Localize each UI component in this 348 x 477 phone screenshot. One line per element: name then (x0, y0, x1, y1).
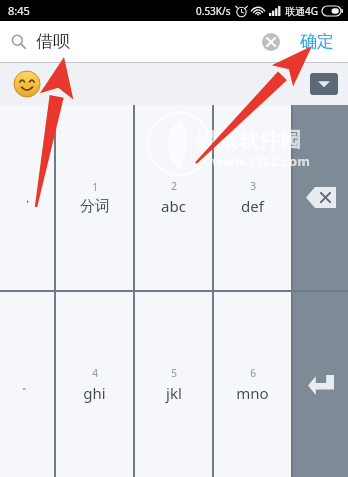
button[interactable]: ， (0, 105, 54, 290)
button[interactable]: 清除 (254, 25, 288, 59)
staticText: abc (161, 196, 186, 216)
button[interactable]: 删除 (293, 105, 348, 290)
button[interactable]: def (214, 105, 291, 290)
staticText: 。 (22, 378, 33, 392)
button[interactable]: 分词 (56, 105, 133, 290)
staticText: www.33LC.com (212, 152, 310, 170)
staticText: 联通4G (285, 4, 318, 18)
staticText: ghi (83, 383, 106, 403)
staticText: 1 (92, 180, 98, 194)
staticText: 借呗 (36, 31, 70, 52)
staticText: mno (236, 383, 269, 403)
staticText: 3 (250, 179, 256, 193)
button[interactable]: 表情 (12, 69, 42, 99)
button[interactable]: 收起键盘 (310, 73, 338, 95)
staticText: 绿茶软件园 (196, 127, 301, 153)
staticText: 8:45 (8, 3, 30, 18)
button[interactable]: mno (214, 292, 291, 477)
staticText: 0.53K/s (196, 4, 231, 18)
button[interactable]: 确定 (290, 23, 344, 60)
staticText: 。 (66, 77, 78, 92)
button[interactable]: ghi (56, 292, 133, 477)
button[interactable]: 回车 (293, 292, 348, 477)
staticText: 5 (171, 366, 177, 380)
button[interactable]: jkl (135, 292, 212, 477)
staticText: 2 (171, 179, 177, 193)
staticText: 分词 (80, 197, 110, 216)
staticText: ， (22, 191, 33, 205)
staticText: def (241, 196, 264, 216)
staticText: 6 (250, 366, 256, 380)
button[interactable]: abc (135, 105, 212, 290)
staticText: 4 (92, 366, 98, 380)
staticText: jkl (166, 383, 182, 403)
staticText: 确定 (300, 31, 334, 52)
